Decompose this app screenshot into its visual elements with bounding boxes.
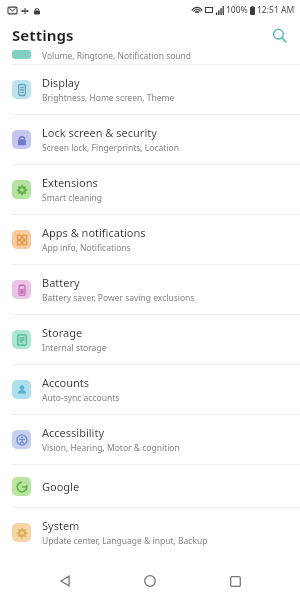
staticText: 12:51 AM: [257, 4, 295, 16]
button[interactable]: Recent apps: [215, 562, 255, 600]
button[interactable]: Google: [0, 465, 300, 507]
button[interactable]: Back: [45, 562, 85, 600]
staticText: Display: [42, 75, 80, 90]
staticText: Accounts: [42, 375, 90, 390]
staticText: Battery saver, Power saving exclusions: [42, 292, 195, 304]
staticText: Google: [42, 479, 80, 494]
staticText: Smart cleaning: [42, 192, 102, 204]
staticText: 100%: [226, 4, 248, 16]
staticText: Storage: [42, 325, 83, 340]
staticText: Apps & notifications: [42, 225, 146, 240]
button[interactable]: Apps & notifications: [0, 215, 300, 264]
button[interactable]: Battery: [0, 265, 300, 314]
staticText: Internal storage: [42, 342, 107, 354]
button[interactable]: Home: [130, 562, 170, 600]
staticText: Update center, Language & input, Backup: [42, 535, 208, 547]
button[interactable]: Accounts: [0, 365, 300, 414]
button[interactable]: System: [0, 508, 300, 557]
staticText: Battery: [42, 275, 80, 290]
staticText: Extensions: [42, 175, 98, 190]
button[interactable]: Display: [0, 65, 300, 114]
button[interactable]: Search: [266, 22, 292, 48]
staticText: Lock screen & security: [42, 125, 157, 140]
staticText: Settings: [12, 25, 74, 45]
staticText: App info, Notifications: [42, 242, 131, 254]
staticText: Auto-sync accounts: [42, 392, 120, 404]
button[interactable]: Storage: [0, 315, 300, 364]
staticText: Vision, Hearing, Motor & cognition: [42, 442, 180, 454]
staticText: Volume, Ringtone, Notification sound: [42, 50, 192, 62]
button[interactable]: Lock screen & security: [0, 115, 300, 164]
button[interactable]: Extensions: [0, 165, 300, 214]
staticText: System: [42, 518, 80, 533]
staticText: Accessibility: [42, 425, 105, 440]
button[interactable]: Accessibility: [0, 415, 300, 464]
staticText: Screen lock, Fingerprints, Location: [42, 142, 179, 154]
staticText: Brightness, Home screen, Theme: [42, 92, 175, 104]
